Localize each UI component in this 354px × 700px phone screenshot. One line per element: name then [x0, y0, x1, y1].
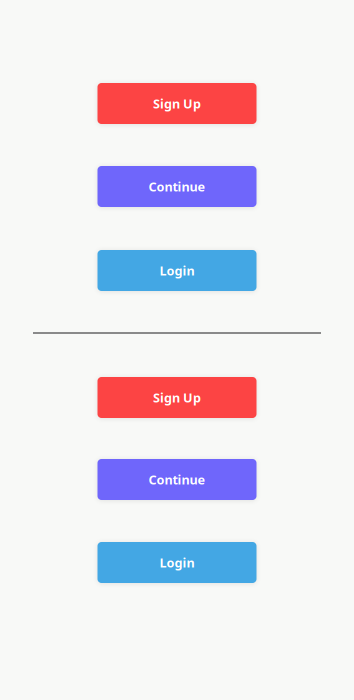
staticText: Continue	[148, 178, 205, 195]
button[interactable]: Login	[97, 542, 256, 583]
staticText: Sign Up	[153, 389, 201, 406]
staticText: Login	[159, 262, 194, 279]
button[interactable]: Sign Up	[97, 377, 256, 418]
button[interactable]: Continue	[97, 166, 256, 207]
button[interactable]: Sign Up	[97, 83, 256, 124]
button[interactable]: Continue	[97, 459, 256, 500]
staticText: Continue	[148, 471, 205, 488]
staticText: Login	[159, 554, 194, 571]
staticText: Sign Up	[153, 95, 201, 112]
button[interactable]: Login	[97, 250, 256, 291]
